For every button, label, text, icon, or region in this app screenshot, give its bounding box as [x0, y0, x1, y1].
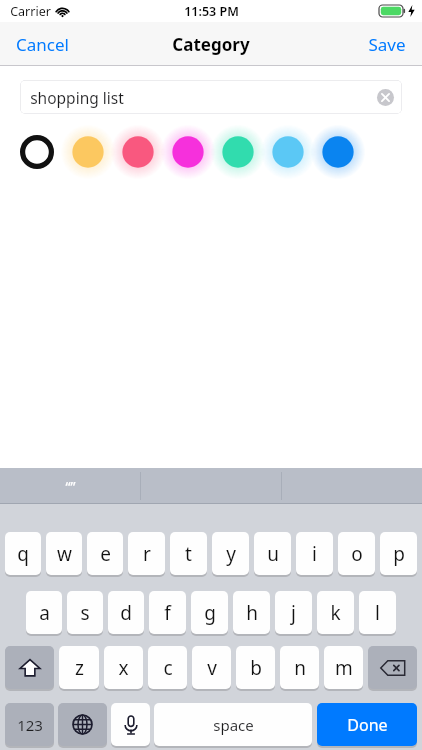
staticText: f	[164, 600, 171, 626]
staticText: t	[185, 541, 192, 567]
button[interactable]: p	[380, 532, 417, 577]
staticText: 11:53 PM	[184, 3, 239, 20]
staticText: m	[335, 655, 353, 681]
staticText: j	[291, 600, 296, 626]
button[interactable]: 123	[5, 703, 54, 748]
staticText: z	[75, 655, 84, 681]
staticText: n	[294, 655, 306, 681]
staticText: space	[213, 715, 254, 735]
staticText: y	[226, 541, 236, 567]
button[interactable]: a	[26, 591, 62, 636]
button[interactable]: l	[359, 591, 396, 636]
button[interactable]: Shift	[5, 646, 54, 691]
button[interactable]: Switch keyboard	[58, 703, 107, 748]
button[interactable]: c	[148, 646, 187, 691]
staticText: shopping list	[30, 87, 124, 108]
button[interactable]: Colour 4	[221, 135, 255, 169]
button[interactable]: No colour	[20, 135, 54, 169]
staticText: p	[393, 541, 405, 567]
staticText: h	[246, 600, 258, 626]
button[interactable]: d	[108, 591, 144, 636]
button[interactable]: Dictation	[111, 703, 150, 748]
button[interactable]: t	[170, 532, 207, 577]
staticText: w	[57, 541, 72, 567]
staticText: Category	[172, 33, 250, 56]
staticText: s	[80, 600, 90, 626]
staticText: x	[118, 655, 129, 681]
button[interactable]: y	[212, 532, 249, 577]
staticText: c	[163, 655, 173, 681]
button[interactable]: x	[104, 646, 143, 691]
staticText: Save	[368, 33, 406, 56]
staticText: q	[17, 541, 29, 567]
button[interactable]: q	[5, 532, 41, 577]
button[interactable]: w	[46, 532, 82, 577]
staticText: u	[267, 541, 279, 567]
staticText: Cancel	[16, 33, 69, 56]
button[interactable]: Done	[317, 703, 417, 748]
button[interactable]: Colour 5	[271, 135, 305, 169]
staticText: l	[375, 600, 380, 626]
button[interactable]: o	[338, 532, 375, 577]
staticText: k	[330, 600, 341, 626]
button[interactable]: Colour 6	[321, 135, 355, 169]
button[interactable]: z	[59, 646, 99, 691]
button[interactable]: i	[296, 532, 333, 577]
staticText: r	[143, 541, 151, 567]
button[interactable]: e	[87, 532, 123, 577]
staticText: v	[207, 655, 217, 681]
staticText: g	[204, 600, 216, 626]
staticText: Done	[347, 714, 388, 736]
staticText: 123	[17, 715, 43, 735]
staticText: “”	[65, 477, 76, 496]
button[interactable]: Colour 2	[121, 135, 155, 169]
button[interactable]: r	[128, 532, 165, 577]
button[interactable]: v	[192, 646, 231, 691]
button[interactable]: b	[236, 646, 275, 691]
staticText: d	[120, 600, 132, 626]
button[interactable]: n	[280, 646, 319, 691]
button[interactable]: Clear text	[377, 89, 394, 106]
button[interactable]: s	[67, 591, 103, 636]
button[interactable]: Cancel	[0, 23, 85, 66]
button[interactable]: Colour 1	[71, 135, 105, 169]
button[interactable]: m	[324, 646, 363, 691]
button[interactable]: h	[233, 591, 270, 636]
button[interactable]: shopping list	[20, 80, 402, 114]
staticText: b	[250, 655, 262, 681]
button[interactable]: k	[317, 591, 354, 636]
button[interactable]: j	[275, 591, 312, 636]
button[interactable]: u	[254, 532, 291, 577]
button[interactable]: Save	[352, 23, 422, 66]
button[interactable]: g	[191, 591, 228, 636]
staticText: i	[312, 541, 317, 567]
button[interactable]: space	[154, 703, 312, 748]
staticText: Carrier	[10, 3, 51, 20]
button[interactable]: Backspace	[368, 646, 417, 691]
button[interactable]: “”	[0, 468, 141, 504]
staticText: e	[100, 541, 111, 567]
button[interactable]: Colour 3	[171, 135, 205, 169]
button[interactable]: f	[149, 591, 186, 636]
staticText: a	[39, 600, 50, 626]
staticText: o	[351, 541, 363, 567]
